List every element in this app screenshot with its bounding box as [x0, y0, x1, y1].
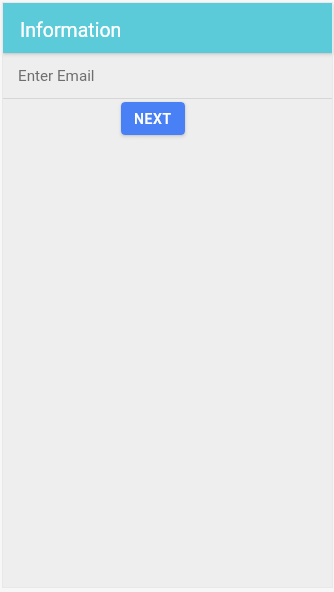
staticText: Enter Email [18, 67, 95, 85]
button[interactable]: Enter Email [3, 53, 332, 98]
staticText: NEXT [134, 111, 172, 127]
staticText: Information [20, 19, 122, 42]
button[interactable]: NEXT [121, 102, 185, 135]
